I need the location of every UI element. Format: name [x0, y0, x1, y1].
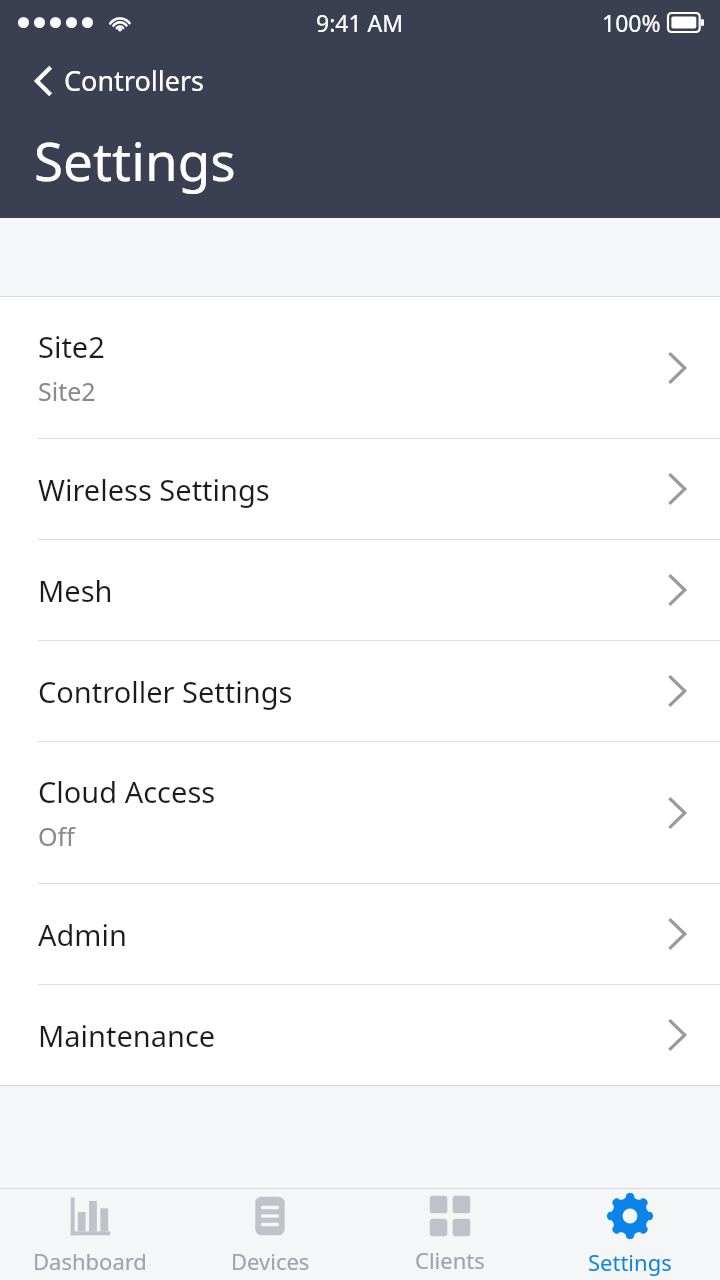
staticText: Wireless Settings [38, 470, 664, 509]
button[interactable]: Clients [360, 1189, 540, 1280]
other: Devices [247, 1193, 293, 1239]
button[interactable]: Admin [0, 884, 720, 984]
other: Settings [606, 1192, 654, 1240]
button[interactable]: Site2 [0, 297, 720, 438]
staticText: Site2 [38, 327, 105, 366]
button[interactable]: Controller Settings [0, 641, 720, 741]
other: Clients [428, 1194, 472, 1238]
staticText: Admin [38, 915, 664, 954]
button[interactable]: Controllers [26, 58, 211, 103]
staticText: Controllers [64, 62, 205, 99]
staticText: Dashboard [33, 1246, 147, 1276]
other: Dashboard [67, 1193, 113, 1239]
staticText: Settings [588, 1247, 672, 1277]
staticText: Cloud Access [38, 772, 216, 811]
button[interactable]: Mesh [0, 540, 720, 640]
button[interactable]: Maintenance [0, 985, 720, 1085]
button[interactable]: Dashboard [0, 1189, 180, 1280]
staticText: Controller Settings [38, 672, 664, 711]
button[interactable]: Wireless Settings [0, 439, 720, 539]
button[interactable]: Devices [180, 1189, 360, 1280]
staticText: Mesh [38, 571, 664, 610]
button[interactable]: Settings [540, 1189, 720, 1280]
staticText: Settings [34, 124, 236, 196]
staticText: 9:41 AM [316, 7, 404, 38]
staticText: Clients [415, 1245, 485, 1275]
staticText: 100% [602, 7, 661, 38]
button[interactable]: Cloud Access [0, 742, 720, 883]
staticText: Site2 [38, 374, 96, 408]
staticText: Maintenance [38, 1016, 664, 1055]
staticText: Devices [231, 1246, 310, 1276]
staticText: Off [38, 819, 75, 853]
